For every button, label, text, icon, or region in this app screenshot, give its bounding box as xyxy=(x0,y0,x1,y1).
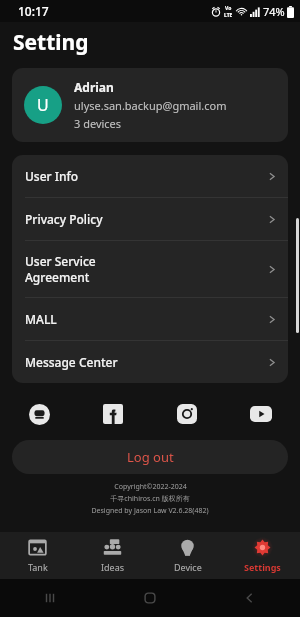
staticText: 74% xyxy=(263,4,285,19)
staticText: Tank xyxy=(28,561,48,573)
button[interactable]: Privacy Policy xyxy=(12,198,288,240)
button[interactable]: Facebook xyxy=(98,399,128,429)
staticText: 千寻chihiros.cn 版权所有 xyxy=(110,494,190,504)
staticText: Device xyxy=(174,561,202,573)
staticText: Message Center xyxy=(25,354,269,370)
staticText: Vo xyxy=(225,5,232,12)
staticText: Adrian xyxy=(74,79,114,95)
staticText: ulyse.san.backup@gmail.com xyxy=(74,98,227,113)
staticText: Log out xyxy=(127,448,174,466)
staticText: 3 devices xyxy=(74,116,122,131)
button[interactable]: Log out xyxy=(12,440,288,474)
button[interactable]: Device xyxy=(150,532,225,579)
other: Home xyxy=(143,591,157,605)
button[interactable]: Tank xyxy=(0,532,75,579)
staticText: 10:17 xyxy=(18,3,49,19)
staticText: Copyright©2022-2024 xyxy=(114,482,187,492)
button[interactable]: Ideas xyxy=(75,532,150,579)
button[interactable]: Chat xyxy=(24,399,54,429)
button[interactable]: Instagram xyxy=(172,399,202,429)
other: Recents xyxy=(43,591,57,605)
other: Back xyxy=(243,591,257,605)
staticText: Setting xyxy=(13,28,89,57)
staticText: Ideas xyxy=(101,561,125,573)
button[interactable]: User Service Agreement xyxy=(12,241,288,297)
staticText: MALL xyxy=(25,311,269,327)
staticText: Designed by Jason Law V2.6.28(482) xyxy=(91,506,209,516)
button[interactable]: Settings xyxy=(225,532,300,579)
button[interactable]: YouTube xyxy=(246,399,276,429)
button[interactable]: U xyxy=(12,68,288,142)
staticText: U xyxy=(37,94,49,116)
button[interactable]: Message Center xyxy=(12,341,288,383)
staticText: User Info xyxy=(25,168,269,184)
staticText: LTE xyxy=(224,12,233,19)
button[interactable]: MALL xyxy=(12,298,288,340)
staticText: User Service Agreement xyxy=(25,253,269,285)
staticText: Settings xyxy=(244,561,281,573)
button[interactable]: User Info xyxy=(12,155,288,197)
staticText: Privacy Policy xyxy=(25,211,269,227)
